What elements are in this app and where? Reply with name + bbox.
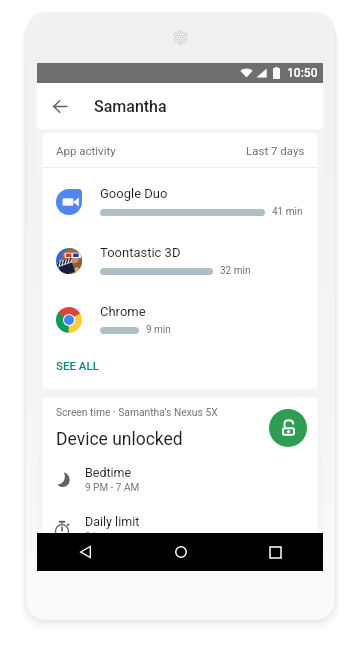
staticText: Device unlocked <box>56 429 183 450</box>
button[interactable]: Toontastic 3D <box>43 231 317 290</box>
staticText: App activity <box>56 144 116 157</box>
staticText: Samantha <box>94 97 167 116</box>
staticText: Chrome <box>100 304 146 319</box>
staticText: 32 min <box>220 265 251 277</box>
staticText: Bedtime <box>85 465 132 480</box>
button[interactable]: Bedtime <box>43 455 317 504</box>
button[interactable]: Recents <box>228 533 323 571</box>
button[interactable]: SEE ALL <box>43 349 317 389</box>
button[interactable]: Chrome <box>43 290 317 349</box>
staticText: SEE ALL <box>56 359 99 372</box>
staticText: Daily limit <box>85 514 140 529</box>
staticText: 9 PM - 7 AM <box>85 482 140 494</box>
staticText: 41 min <box>272 206 303 218</box>
button[interactable]: Google Duo <box>43 172 317 231</box>
button[interactable]: Device unlocked <box>269 409 307 447</box>
staticText: Screen time · Samantha’s Nexus 5X <box>56 406 218 418</box>
staticText: Last 7 days <box>246 144 305 157</box>
button[interactable]: Home <box>133 533 228 571</box>
staticText: 2 hours <box>85 531 119 543</box>
button[interactable]: Daily limit <box>43 504 317 553</box>
staticText: 10:50 <box>287 66 318 80</box>
staticText: 9 min <box>146 324 171 336</box>
button[interactable]: Back <box>48 95 71 118</box>
button[interactable]: Back <box>37 533 133 571</box>
staticText: Toontastic 3D <box>100 245 181 260</box>
staticText: Google Duo <box>100 186 168 201</box>
